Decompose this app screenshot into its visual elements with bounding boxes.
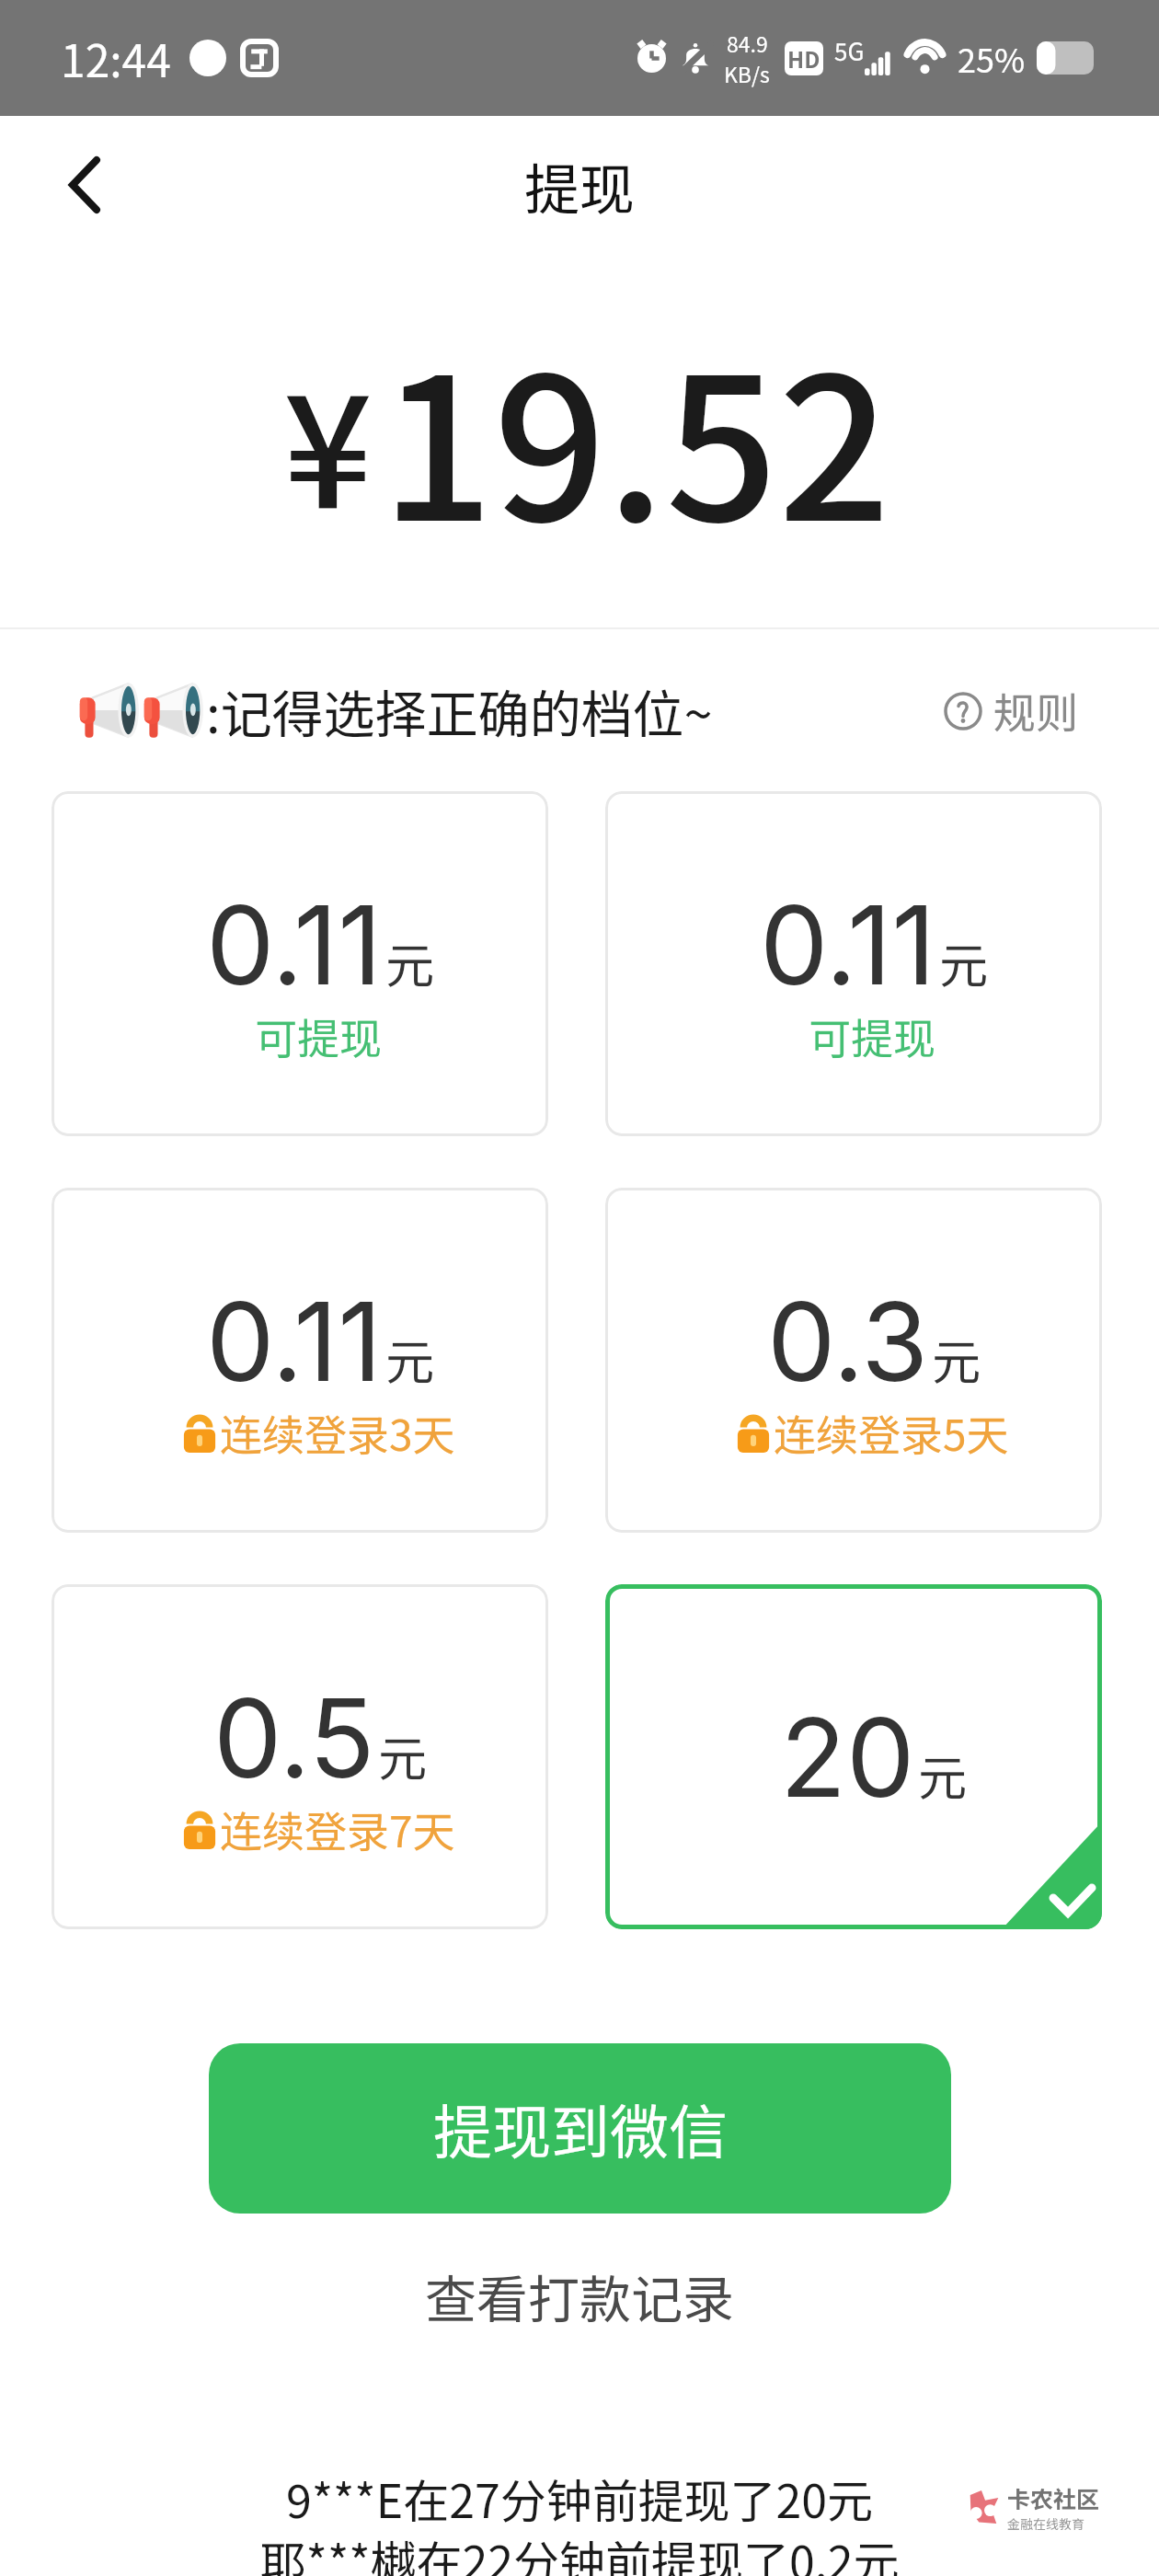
staticText: 规则: [993, 680, 1078, 742]
staticText: 25%: [958, 34, 1026, 82]
staticText: 提现: [524, 145, 635, 225]
staticText: 元: [385, 1324, 434, 1395]
staticText: 0.5: [213, 1673, 375, 1804]
staticText: 19.52: [381, 292, 891, 578]
staticText: 0.11: [760, 880, 936, 1011]
staticText: 元: [385, 927, 434, 998]
staticText: 卡农社区: [1007, 2481, 1100, 2514]
button[interactable]: 0.11: [52, 791, 548, 1136]
button[interactable]: 查看打款记录: [0, 2259, 1159, 2333]
button[interactable]: 0.11: [52, 1188, 548, 1533]
button[interactable]: 0.3: [605, 1188, 1102, 1533]
staticText: 12:44: [61, 26, 171, 90]
staticText: 连续登录3天: [220, 1402, 455, 1464]
staticText: ¥: [283, 328, 373, 554]
button[interactable]: 0.5: [52, 1584, 548, 1929]
staticText: 提现到微信: [433, 2086, 728, 2171]
staticText: 0.11: [206, 1276, 383, 1408]
button[interactable]: Back: [28, 128, 142, 242]
staticText: KB/s: [724, 58, 770, 88]
staticText: 连续登录7天: [220, 1799, 455, 1860]
staticText: 可提现: [255, 1006, 382, 1067]
staticText: 元: [932, 1324, 981, 1395]
button[interactable]: 规则: [944, 680, 1078, 742]
staticText: HD: [787, 42, 820, 75]
staticText: 元: [378, 1720, 427, 1791]
staticText: 元: [918, 1740, 967, 1811]
staticText: 5G: [834, 33, 865, 68]
staticText: 连续登录5天: [774, 1402, 1009, 1464]
button[interactable]: 20: [605, 1584, 1102, 1929]
staticText: 20: [780, 1692, 915, 1823]
staticText: :记得选择正确的档位~: [206, 673, 713, 748]
staticText: 0.11: [206, 880, 383, 1011]
button[interactable]: 提现到微信: [209, 2043, 951, 2214]
button[interactable]: 0.11: [605, 791, 1102, 1136]
staticText: 9***E在27分钟前提现了20元 耶***樾在22分钟前提现了0.2元: [0, 2465, 1159, 2576]
staticText: 元: [939, 927, 988, 998]
staticText: 可提现: [809, 1006, 935, 1067]
staticText: 84.9: [727, 28, 768, 58]
staticText: 0.3: [767, 1276, 929, 1408]
staticText: 金融在线教育: [1007, 2514, 1084, 2533]
